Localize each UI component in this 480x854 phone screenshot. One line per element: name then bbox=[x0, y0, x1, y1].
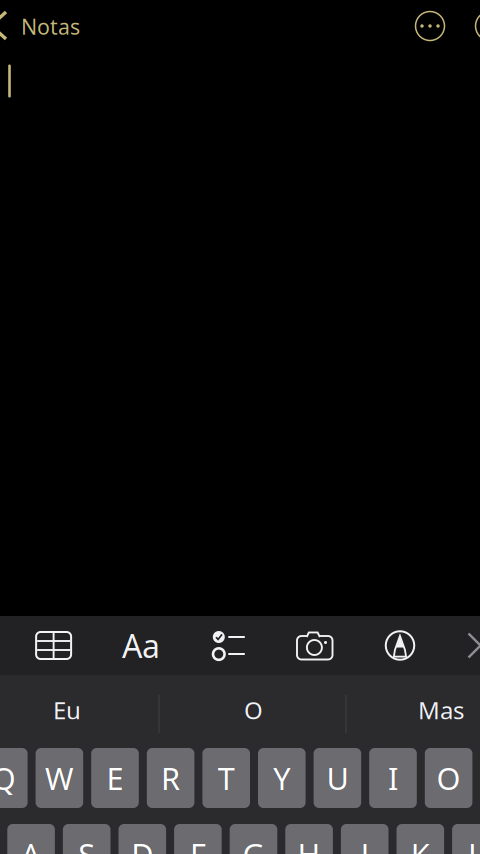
staticText: Eu bbox=[53, 694, 81, 726]
staticText: R bbox=[161, 758, 180, 798]
staticText: S bbox=[78, 834, 95, 854]
button[interactable]: S bbox=[63, 824, 110, 854]
staticText: E bbox=[106, 758, 123, 798]
button[interactable]: G bbox=[230, 824, 277, 854]
staticText: L bbox=[468, 834, 480, 854]
button[interactable]: I bbox=[369, 748, 417, 808]
button[interactable]: D bbox=[118, 824, 166, 854]
button[interactable]: Markup bbox=[368, 620, 432, 670]
button[interactable]: L bbox=[452, 824, 480, 854]
button[interactable]: Mas bbox=[374, 687, 480, 733]
staticText: Notas bbox=[21, 12, 80, 41]
button[interactable]: Eu bbox=[0, 687, 146, 733]
staticText: W bbox=[45, 758, 74, 798]
staticText: U bbox=[326, 758, 348, 798]
button[interactable]: U bbox=[314, 748, 361, 808]
staticText: Y bbox=[273, 758, 290, 798]
staticText: D bbox=[131, 834, 153, 854]
button[interactable]: Y bbox=[258, 748, 306, 808]
button[interactable]: W bbox=[36, 748, 83, 808]
button[interactable]: Table bbox=[22, 620, 86, 670]
staticText: T bbox=[218, 758, 235, 798]
button[interactable]: A bbox=[7, 824, 55, 854]
button[interactable]: Back bbox=[0, 12, 7, 40]
button[interactable]: H bbox=[285, 824, 333, 854]
button[interactable]: R bbox=[147, 748, 194, 808]
button[interactable]: O bbox=[160, 687, 347, 733]
staticText: J bbox=[361, 834, 369, 854]
staticText: Q bbox=[0, 758, 16, 798]
button[interactable]: O bbox=[425, 748, 472, 808]
button[interactable]: Checklist bbox=[197, 620, 261, 670]
staticText: H bbox=[298, 834, 321, 854]
staticText: F bbox=[190, 834, 206, 854]
button[interactable]: K bbox=[396, 824, 444, 854]
staticText: K bbox=[411, 834, 430, 854]
staticText: O bbox=[437, 758, 461, 798]
staticText: Mas bbox=[418, 694, 464, 726]
button[interactable]: More bbox=[414, 10, 445, 41]
button[interactable]: Camera bbox=[283, 620, 347, 670]
button[interactable]: Format bbox=[109, 620, 173, 670]
button[interactable]: Q bbox=[0, 748, 28, 808]
button[interactable]: J bbox=[341, 824, 388, 854]
staticText: G bbox=[242, 834, 264, 854]
staticText: O bbox=[244, 694, 263, 726]
staticText: I bbox=[388, 758, 398, 798]
staticText: A bbox=[21, 834, 41, 854]
button[interactable]: New note bbox=[475, 11, 480, 40]
button[interactable]: T bbox=[202, 748, 250, 808]
button[interactable]: Notas bbox=[21, 11, 80, 41]
staticText: Aa bbox=[122, 624, 160, 667]
button[interactable]: F bbox=[174, 824, 222, 854]
button[interactable]: More tools bbox=[468, 633, 480, 657]
button[interactable]: E bbox=[91, 748, 139, 808]
